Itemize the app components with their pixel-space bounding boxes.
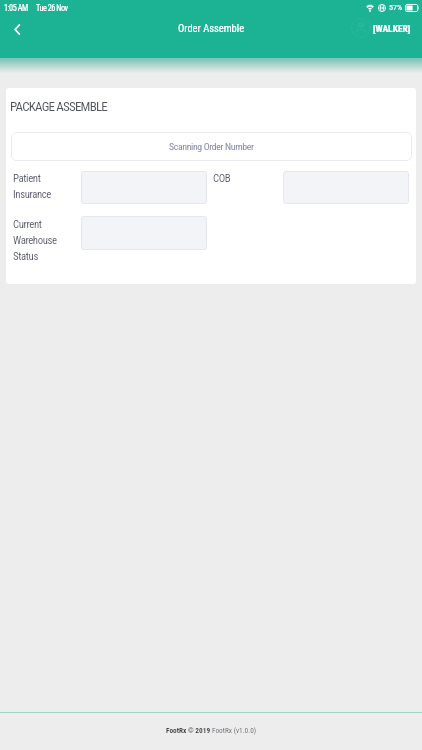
staticText: 1:05 AM: [4, 3, 28, 13]
staticText: 57%: [389, 3, 402, 12]
staticText: Tue 26 Nov: [36, 3, 68, 13]
button[interactable]: [81, 216, 207, 250]
staticText: Current Warehouse Status: [13, 218, 57, 262]
staticText: FootRx © 2019: [166, 726, 212, 735]
button[interactable]: Back: [0, 16, 34, 40]
staticText: COB: [213, 172, 231, 185]
staticText: Scanning Order Number: [169, 141, 254, 152]
button[interactable]: [WALKER]: [373, 23, 411, 34]
staticText: PACKAGE ASSEMBLE: [10, 99, 107, 114]
staticText: Patient Insurance: [13, 172, 52, 200]
button[interactable]: Scanning Order Number: [11, 132, 412, 161]
staticText: Order Assemble: [178, 22, 245, 34]
button[interactable]: Account: [350, 17, 372, 39]
staticText: FootRx (v1.0.0): [212, 726, 257, 735]
button[interactable]: [81, 171, 207, 204]
button[interactable]: [283, 171, 409, 204]
